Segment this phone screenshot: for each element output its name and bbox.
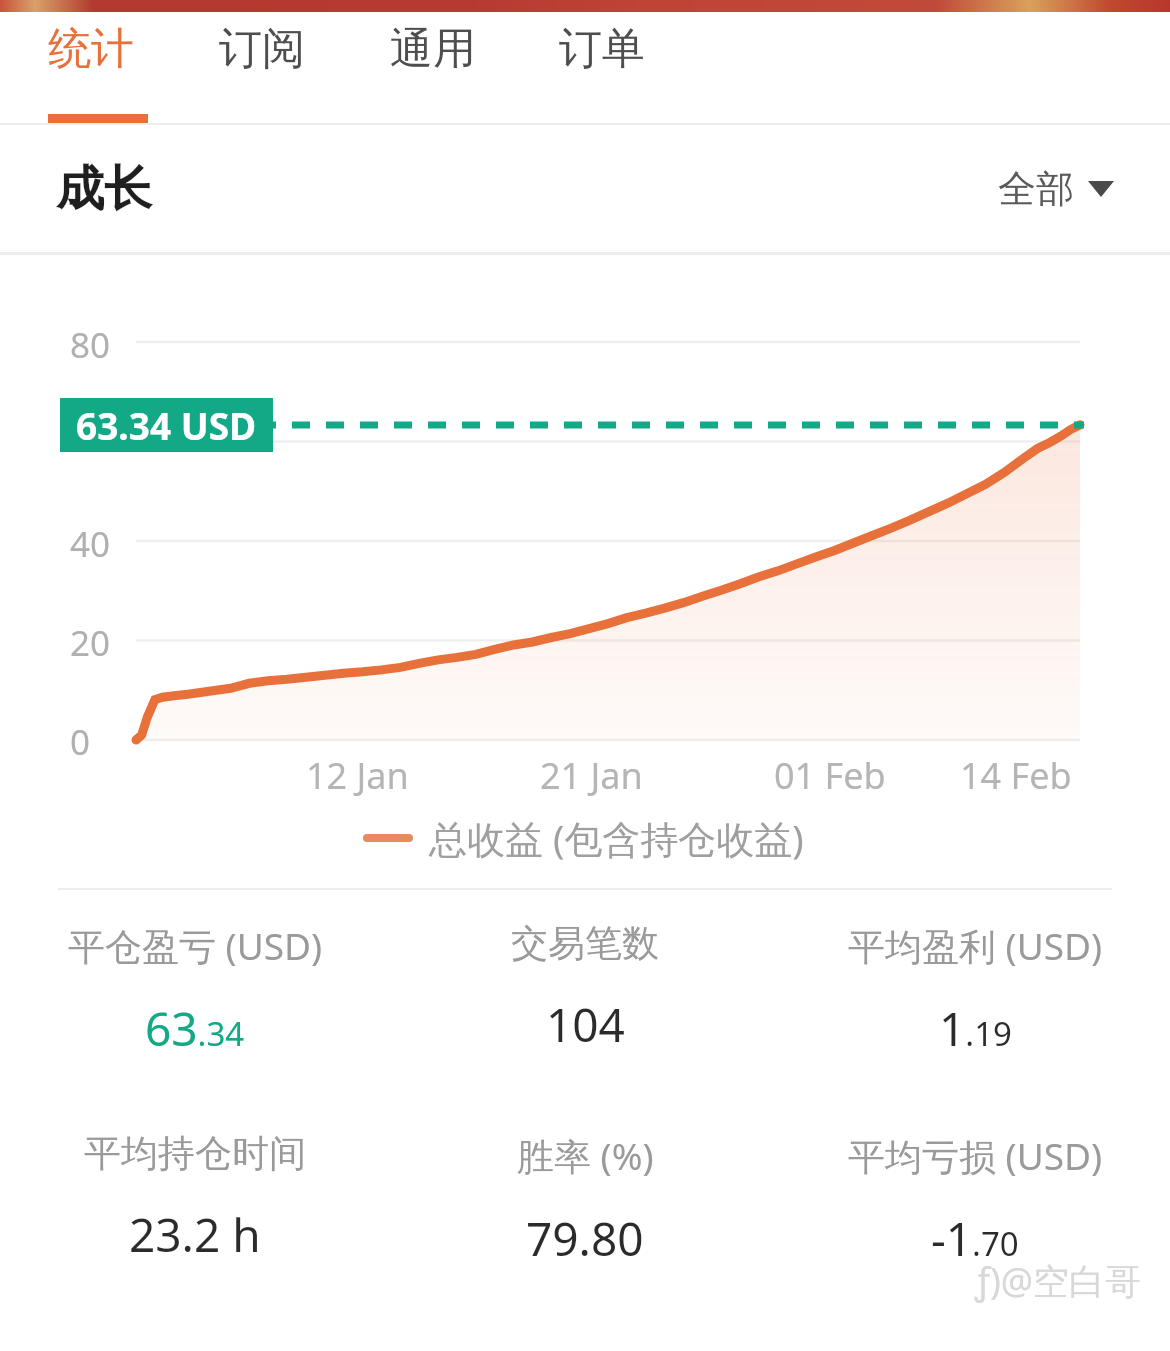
- staticText: 订单: [559, 22, 645, 76]
- staticText: 20: [70, 619, 111, 667]
- staticText: 63.34: [145, 997, 245, 1060]
- staticText: 平均持仓时间: [84, 1130, 306, 1177]
- button[interactable]: 通用: [390, 12, 476, 86]
- button[interactable]: 平均亏损 (USD): [780, 1130, 1170, 1270]
- staticText: 40: [70, 520, 111, 568]
- staticText: 1.19: [939, 997, 1012, 1060]
- staticText: 平仓盈亏 (USD): [68, 920, 323, 971]
- staticText: 21 Jan: [540, 751, 643, 800]
- staticText: 80: [70, 321, 111, 369]
- staticText: 平均亏损 (USD): [848, 1130, 1103, 1181]
- staticText: 总收益 (包含持仓收益): [429, 812, 804, 864]
- staticText: 通用: [390, 22, 476, 76]
- button[interactable]: 平均盈利 (USD): [780, 920, 1170, 1060]
- staticText: ƒ)@空白哥: [975, 1256, 1142, 1305]
- staticText: 01 Feb: [774, 751, 886, 800]
- staticText: 12 Jan: [306, 751, 409, 800]
- staticText: 统计: [48, 22, 134, 76]
- button[interactable]: 胜率 (%): [390, 1130, 780, 1270]
- staticText: 104: [546, 993, 625, 1056]
- button[interactable]: 交易笔数: [390, 920, 780, 1056]
- button[interactable]: 订阅: [219, 12, 305, 86]
- staticText: 全部: [998, 165, 1074, 213]
- button[interactable]: 统计: [48, 12, 134, 86]
- button[interactable]: 平仓盈亏 (USD): [0, 920, 390, 1060]
- staticText: 0: [70, 718, 91, 766]
- staticText: 订阅: [219, 22, 305, 76]
- staticText: 63.34 USD: [76, 400, 257, 450]
- staticText: 成长: [56, 159, 152, 219]
- button[interactable]: 平均持仓时间: [0, 1130, 390, 1266]
- staticText: 14 Feb: [960, 751, 1072, 800]
- staticText: 胜率 (%): [517, 1130, 654, 1181]
- staticText: 23.2 h: [129, 1203, 261, 1266]
- button[interactable]: 订单: [559, 12, 645, 86]
- staticText: 79.80: [526, 1207, 644, 1270]
- staticText: 交易笔数: [511, 920, 659, 967]
- staticText: 平均盈利 (USD): [848, 920, 1103, 971]
- staticText: -1.70: [931, 1207, 1019, 1270]
- button[interactable]: 全部: [990, 157, 1122, 221]
